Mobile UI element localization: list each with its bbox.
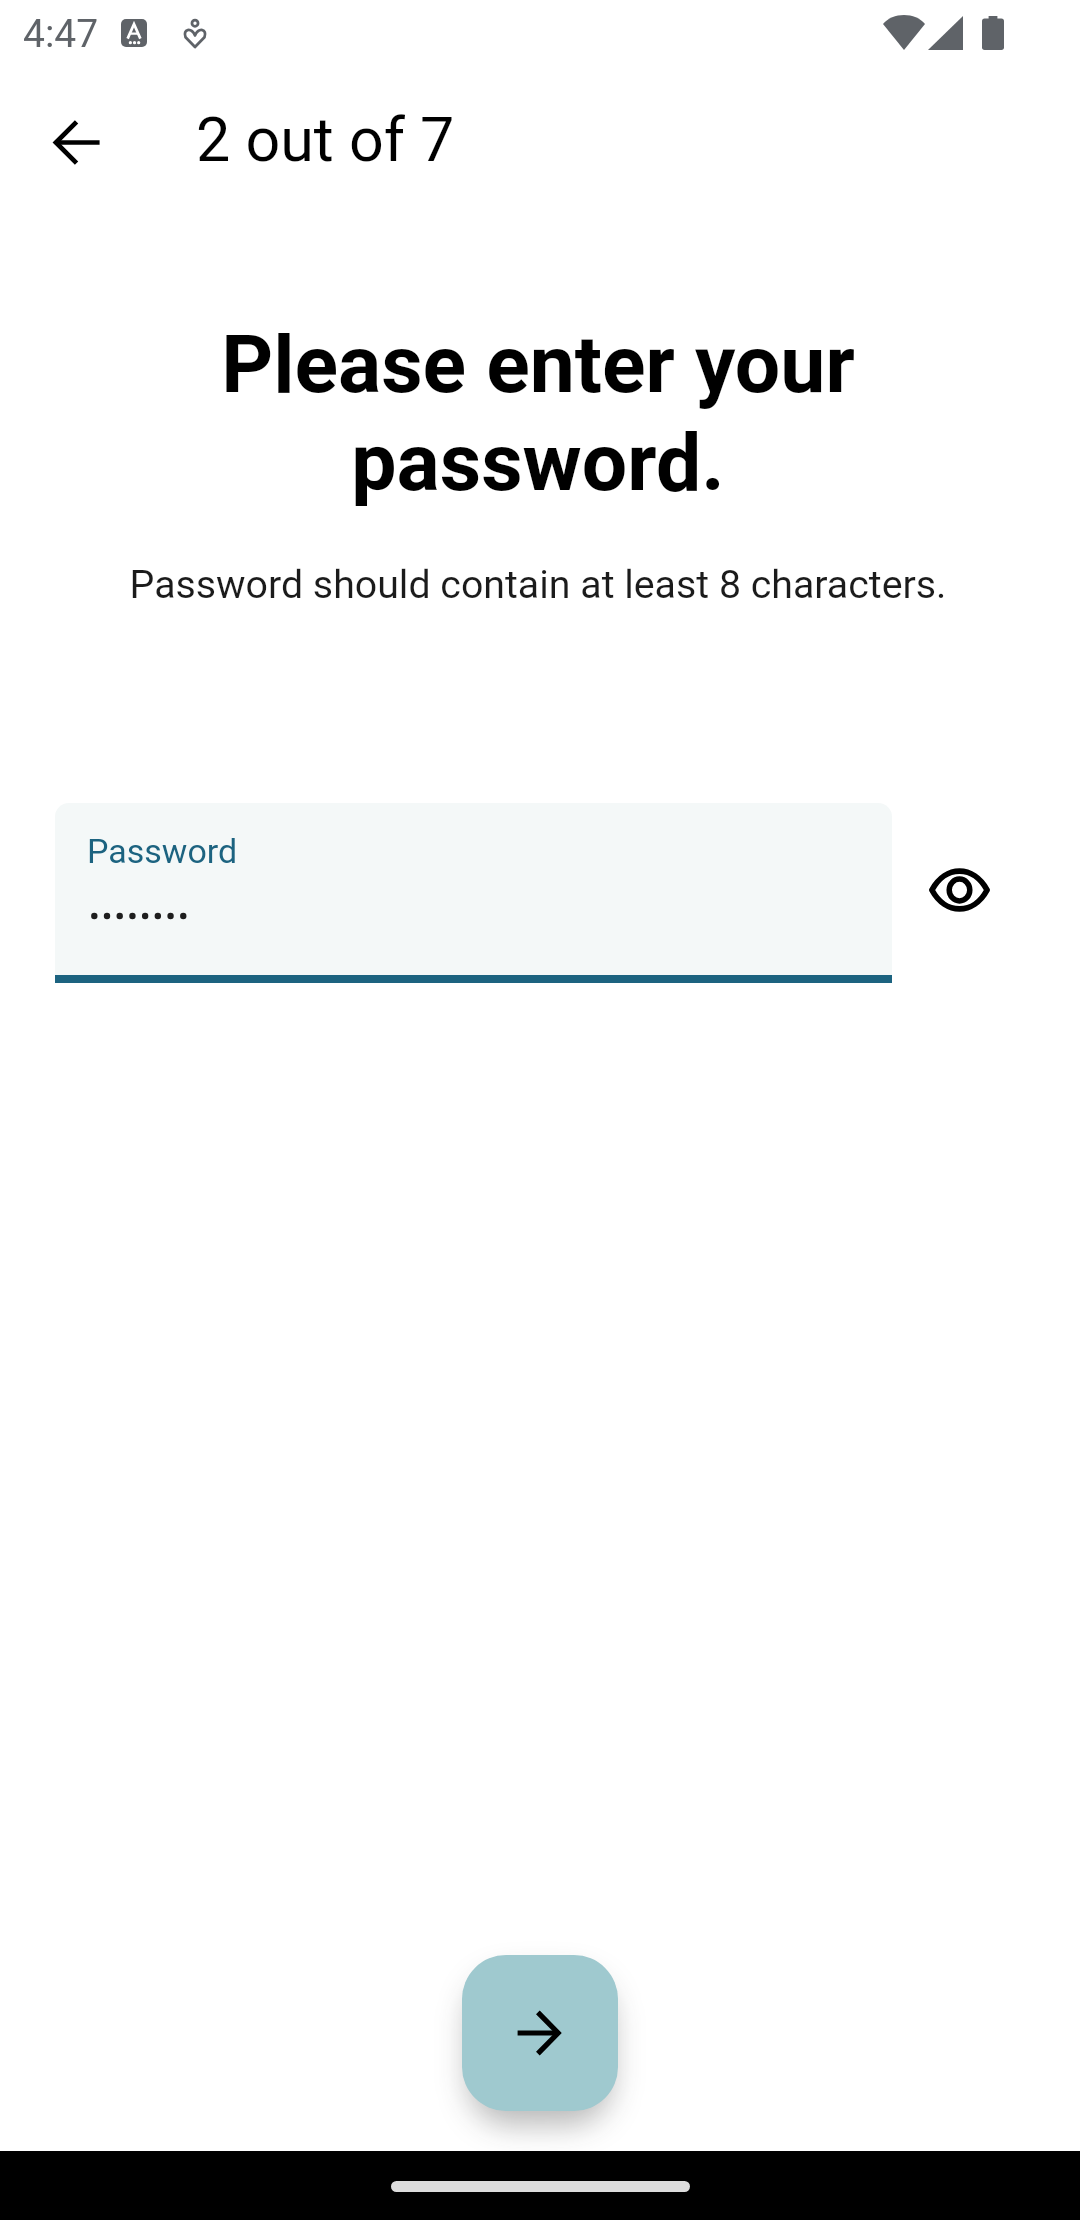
staticText: Password should contain at least 8 chara… xyxy=(38,562,1038,608)
button[interactable]: Back xyxy=(30,95,125,190)
button[interactable]: Show password xyxy=(912,842,1007,937)
staticText: Password xyxy=(87,831,238,871)
staticText: 4:47 xyxy=(23,11,99,57)
button[interactable] xyxy=(55,803,892,975)
staticText: 2 out of 7 xyxy=(196,104,455,175)
staticText: Please enter your password. xyxy=(54,317,1022,509)
button[interactable]: Next xyxy=(462,1955,618,2111)
